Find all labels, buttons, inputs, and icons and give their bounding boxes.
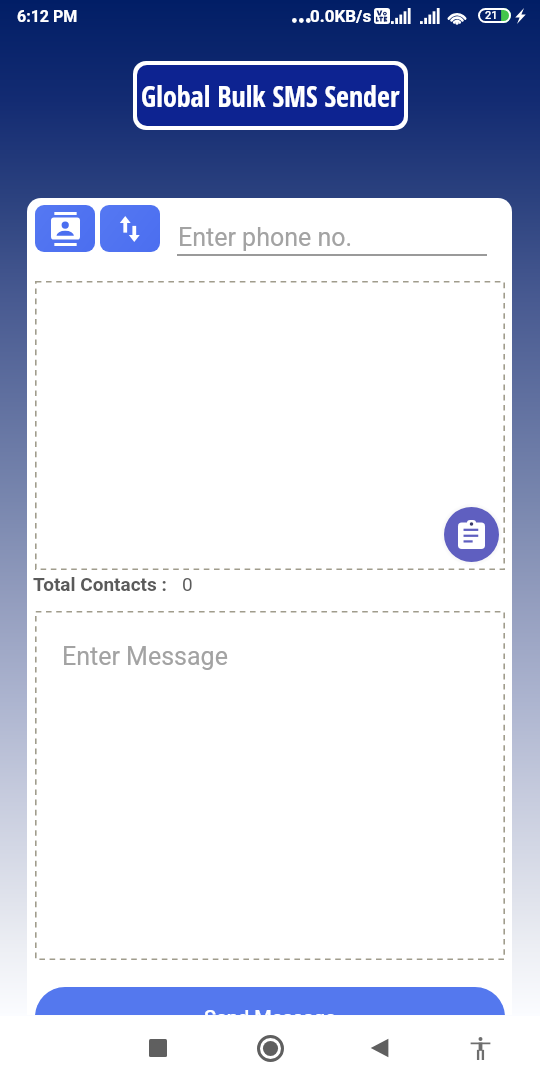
button[interactable]: Enter phone no.: [177, 210, 489, 258]
button[interactable]: Send Message: [35, 987, 505, 1015]
staticText: 0.0KB/s: [310, 6, 372, 26]
staticText: Enter Message: [62, 642, 228, 671]
staticText: 6:12 PM: [17, 7, 78, 26]
staticText: Global Bulk SMS Sender: [141, 77, 400, 115]
staticText: 0: [182, 573, 193, 595]
button[interactable]: Paste from clipboard: [444, 507, 499, 562]
staticText: Send Message: [204, 1006, 336, 1015]
button[interactable]: Global Bulk SMS Sender: [137, 65, 404, 126]
button[interactable]: Recent apps: [128, 1016, 188, 1080]
button[interactable]: Home: [240, 1016, 300, 1080]
button[interactable]: Total Contacts :: [33, 573, 193, 595]
staticText: Total Contacts :: [33, 573, 167, 595]
staticText: 21: [485, 9, 498, 22]
button[interactable]: Back: [350, 1016, 410, 1080]
button[interactable]: Pick contacts: [35, 205, 95, 252]
staticText: Enter phone no.: [178, 223, 353, 252]
button[interactable]: Sort contacts: [100, 205, 160, 252]
button[interactable]: Accessibility: [450, 1016, 510, 1080]
button[interactable]: Enter Message: [35, 611, 505, 960]
